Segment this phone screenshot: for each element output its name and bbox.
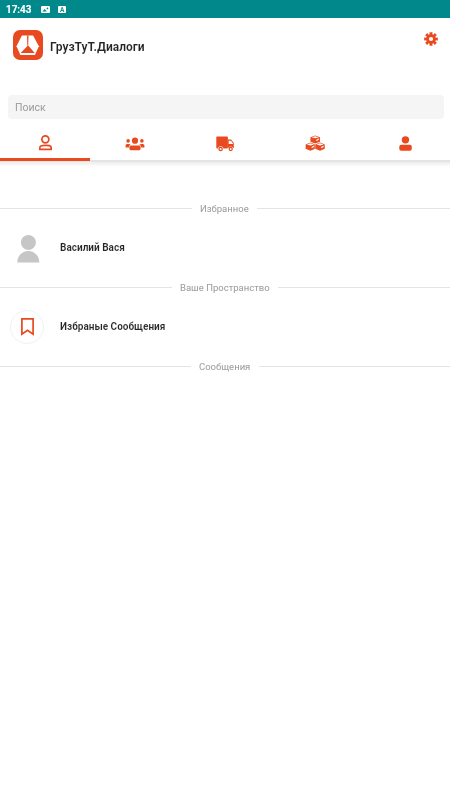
staticText: Ваше Пространство bbox=[180, 282, 270, 293]
staticText: Василий Вася bbox=[60, 242, 125, 254]
other: ГрузТуТ bbox=[13, 30, 43, 60]
button[interactable]: Избраные Сообщения bbox=[0, 304, 450, 349]
staticText: Поиск bbox=[15, 101, 46, 113]
button[interactable]: Transport bbox=[180, 123, 270, 158]
button[interactable]: Profile bbox=[360, 123, 450, 158]
button[interactable]: Contacts bbox=[0, 123, 90, 158]
button[interactable]: Settings bbox=[415, 23, 447, 55]
staticText: Избранное bbox=[200, 203, 249, 214]
staticText: ГрузТуТ.Диалоги bbox=[50, 40, 145, 54]
button[interactable]: Cargo bbox=[270, 123, 360, 158]
staticText: Сообщения bbox=[199, 361, 251, 372]
button[interactable]: Василий Вася bbox=[0, 225, 450, 270]
staticText: Избраные Сообщения bbox=[60, 321, 166, 333]
button[interactable]: Groups bbox=[90, 123, 180, 158]
staticText: A bbox=[60, 6, 65, 13]
staticText: 17:43 bbox=[6, 4, 32, 16]
button[interactable]: Поиск bbox=[8, 95, 444, 119]
